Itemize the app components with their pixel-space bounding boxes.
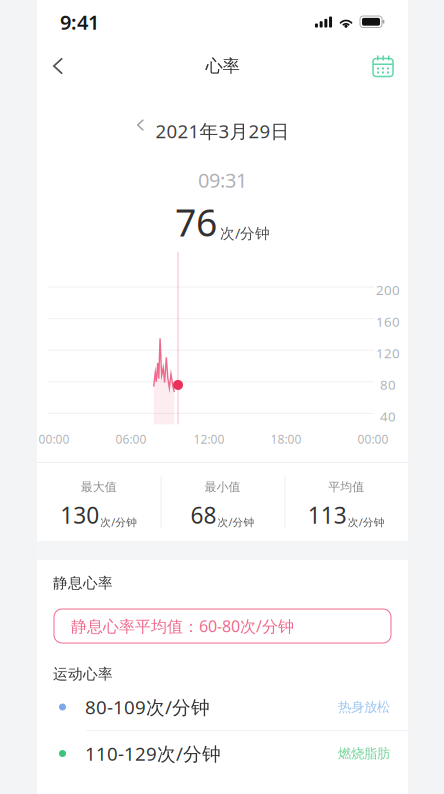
staticText: 00:00 [357,431,388,447]
staticText: 110-129次/分钟 [85,741,221,766]
staticText: 静息心率平均值：60-80次/分钟 [71,615,294,637]
button[interactable]: Calendar [358,44,408,88]
staticText: 80 [380,376,396,393]
staticText: 9:41 [60,9,99,35]
staticText: 最大值 [81,480,117,494]
staticText: 静息心率 [53,574,113,592]
staticText: 次/分钟 [348,515,385,529]
staticText: 06:00 [115,431,146,447]
staticText: 18:00 [270,431,301,447]
button[interactable]: 110-129次/分钟 [37,730,408,776]
staticText: 40 [380,407,396,425]
staticText: 09:31 [198,167,247,193]
staticText: 76 [175,197,217,247]
staticText: 120 [376,344,400,362]
button[interactable]: Back [37,44,79,88]
button[interactable]: Previous day [123,105,158,145]
staticText: 燃烧脂肪 [338,745,390,762]
staticText: 最小值 [204,480,240,494]
staticText: 平均值 [328,480,364,494]
staticText: 心率 [205,55,239,77]
staticText: 00:00 [38,431,69,447]
staticText: 次/分钟 [217,515,254,529]
staticText: 12:00 [193,431,224,447]
staticText: 113 [308,500,347,530]
button[interactable]: 80-109次/分钟 [37,684,408,730]
staticText: 热身放松 [338,699,390,715]
staticText: 68 [190,500,216,530]
staticText: 80-109次/分钟 [85,695,210,719]
staticText: 次/分钟 [100,515,137,529]
staticText: 160 [376,313,400,330]
staticText: 2021年3月29日 [155,119,289,143]
staticText: 200 [376,281,400,299]
staticText: 次/分钟 [220,223,270,243]
staticText: 130 [60,500,99,530]
staticText: 运动心率 [53,665,113,683]
